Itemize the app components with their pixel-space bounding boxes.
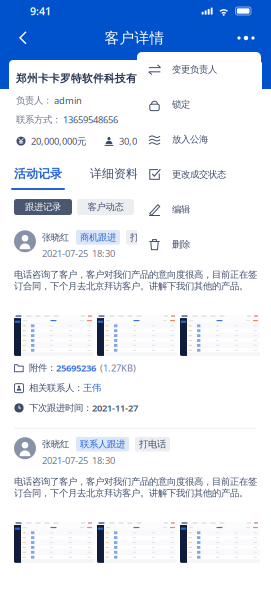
staticText: 放入公海 [172, 134, 208, 145]
button[interactable]: 客户动态 [77, 199, 134, 215]
staticText: 郑州卡卡罗特软件科技有限公司 [16, 72, 170, 85]
staticText: 2021-11-27 [92, 402, 138, 414]
staticText: 打电话 [130, 232, 157, 243]
staticText: 20,000,000元 [31, 135, 86, 147]
staticText: 张晓红 [42, 438, 69, 450]
staticText: 2021-07-25 18:30 [42, 454, 115, 467]
button[interactable]: 更改成交状态 [137, 157, 261, 192]
staticText: 2021-07-25 18:30 [42, 247, 115, 260]
staticText: 负责人： [16, 95, 52, 106]
button[interactable]: 活动记录 [0, 160, 76, 192]
staticText: 编辑 [172, 204, 190, 215]
staticText: admin [52, 94, 82, 106]
button[interactable]: 放入公海 [137, 122, 261, 157]
staticText: 相关联系人： [29, 382, 83, 394]
staticText: 活动记录 [14, 166, 62, 181]
staticText: 删除 [172, 239, 190, 250]
staticText: 打电话 [139, 438, 166, 450]
button[interactable]: 锁定 [137, 87, 261, 122]
staticText: 附件： [29, 362, 56, 374]
staticText: 30,000,000元 [119, 135, 174, 147]
staticText: 张晓红 [42, 232, 69, 243]
staticText: 变更负责人 [172, 64, 217, 75]
button[interactable]: More options [231, 23, 261, 53]
staticText: 联系人跟进 [80, 438, 125, 450]
staticText: 详细资料 [90, 166, 138, 181]
staticText: 王伟 [83, 382, 101, 394]
button[interactable]: 跟进记录 [14, 199, 72, 215]
staticText: 客户动态 [87, 201, 123, 213]
staticText: 电话咨询了客户，客户对我们产品的意向度很高，目前正在签订合同，下个月去北京拜访客… [14, 476, 257, 499]
staticText: 锁定 [172, 99, 190, 110]
staticText: 更改成交状态 [172, 169, 226, 180]
staticText: 下次跟进时间： [29, 402, 92, 414]
staticText: 客户详情 [104, 29, 164, 47]
staticText: 25695236 [56, 362, 96, 374]
button[interactable]: 详细资料 [76, 160, 152, 192]
button[interactable]: 删除 [137, 227, 261, 262]
staticText: 13659548656 [61, 113, 118, 126]
button[interactable]: 编辑 [137, 192, 261, 227]
staticText: 跟进记录 [25, 201, 61, 213]
button[interactable]: Back [8, 23, 38, 53]
staticText: (1.27KB) [100, 362, 136, 374]
staticText: 9:41 [30, 4, 51, 18]
staticText: 电话咨询了客户，客户对我们产品的意向度很高，目前正在签订合同，下个月去北京拜访客… [14, 269, 257, 292]
staticText: 联系方式： [16, 114, 61, 125]
button[interactable]: 变更负责人 [137, 52, 261, 87]
staticText: 商机跟进 [80, 232, 116, 243]
